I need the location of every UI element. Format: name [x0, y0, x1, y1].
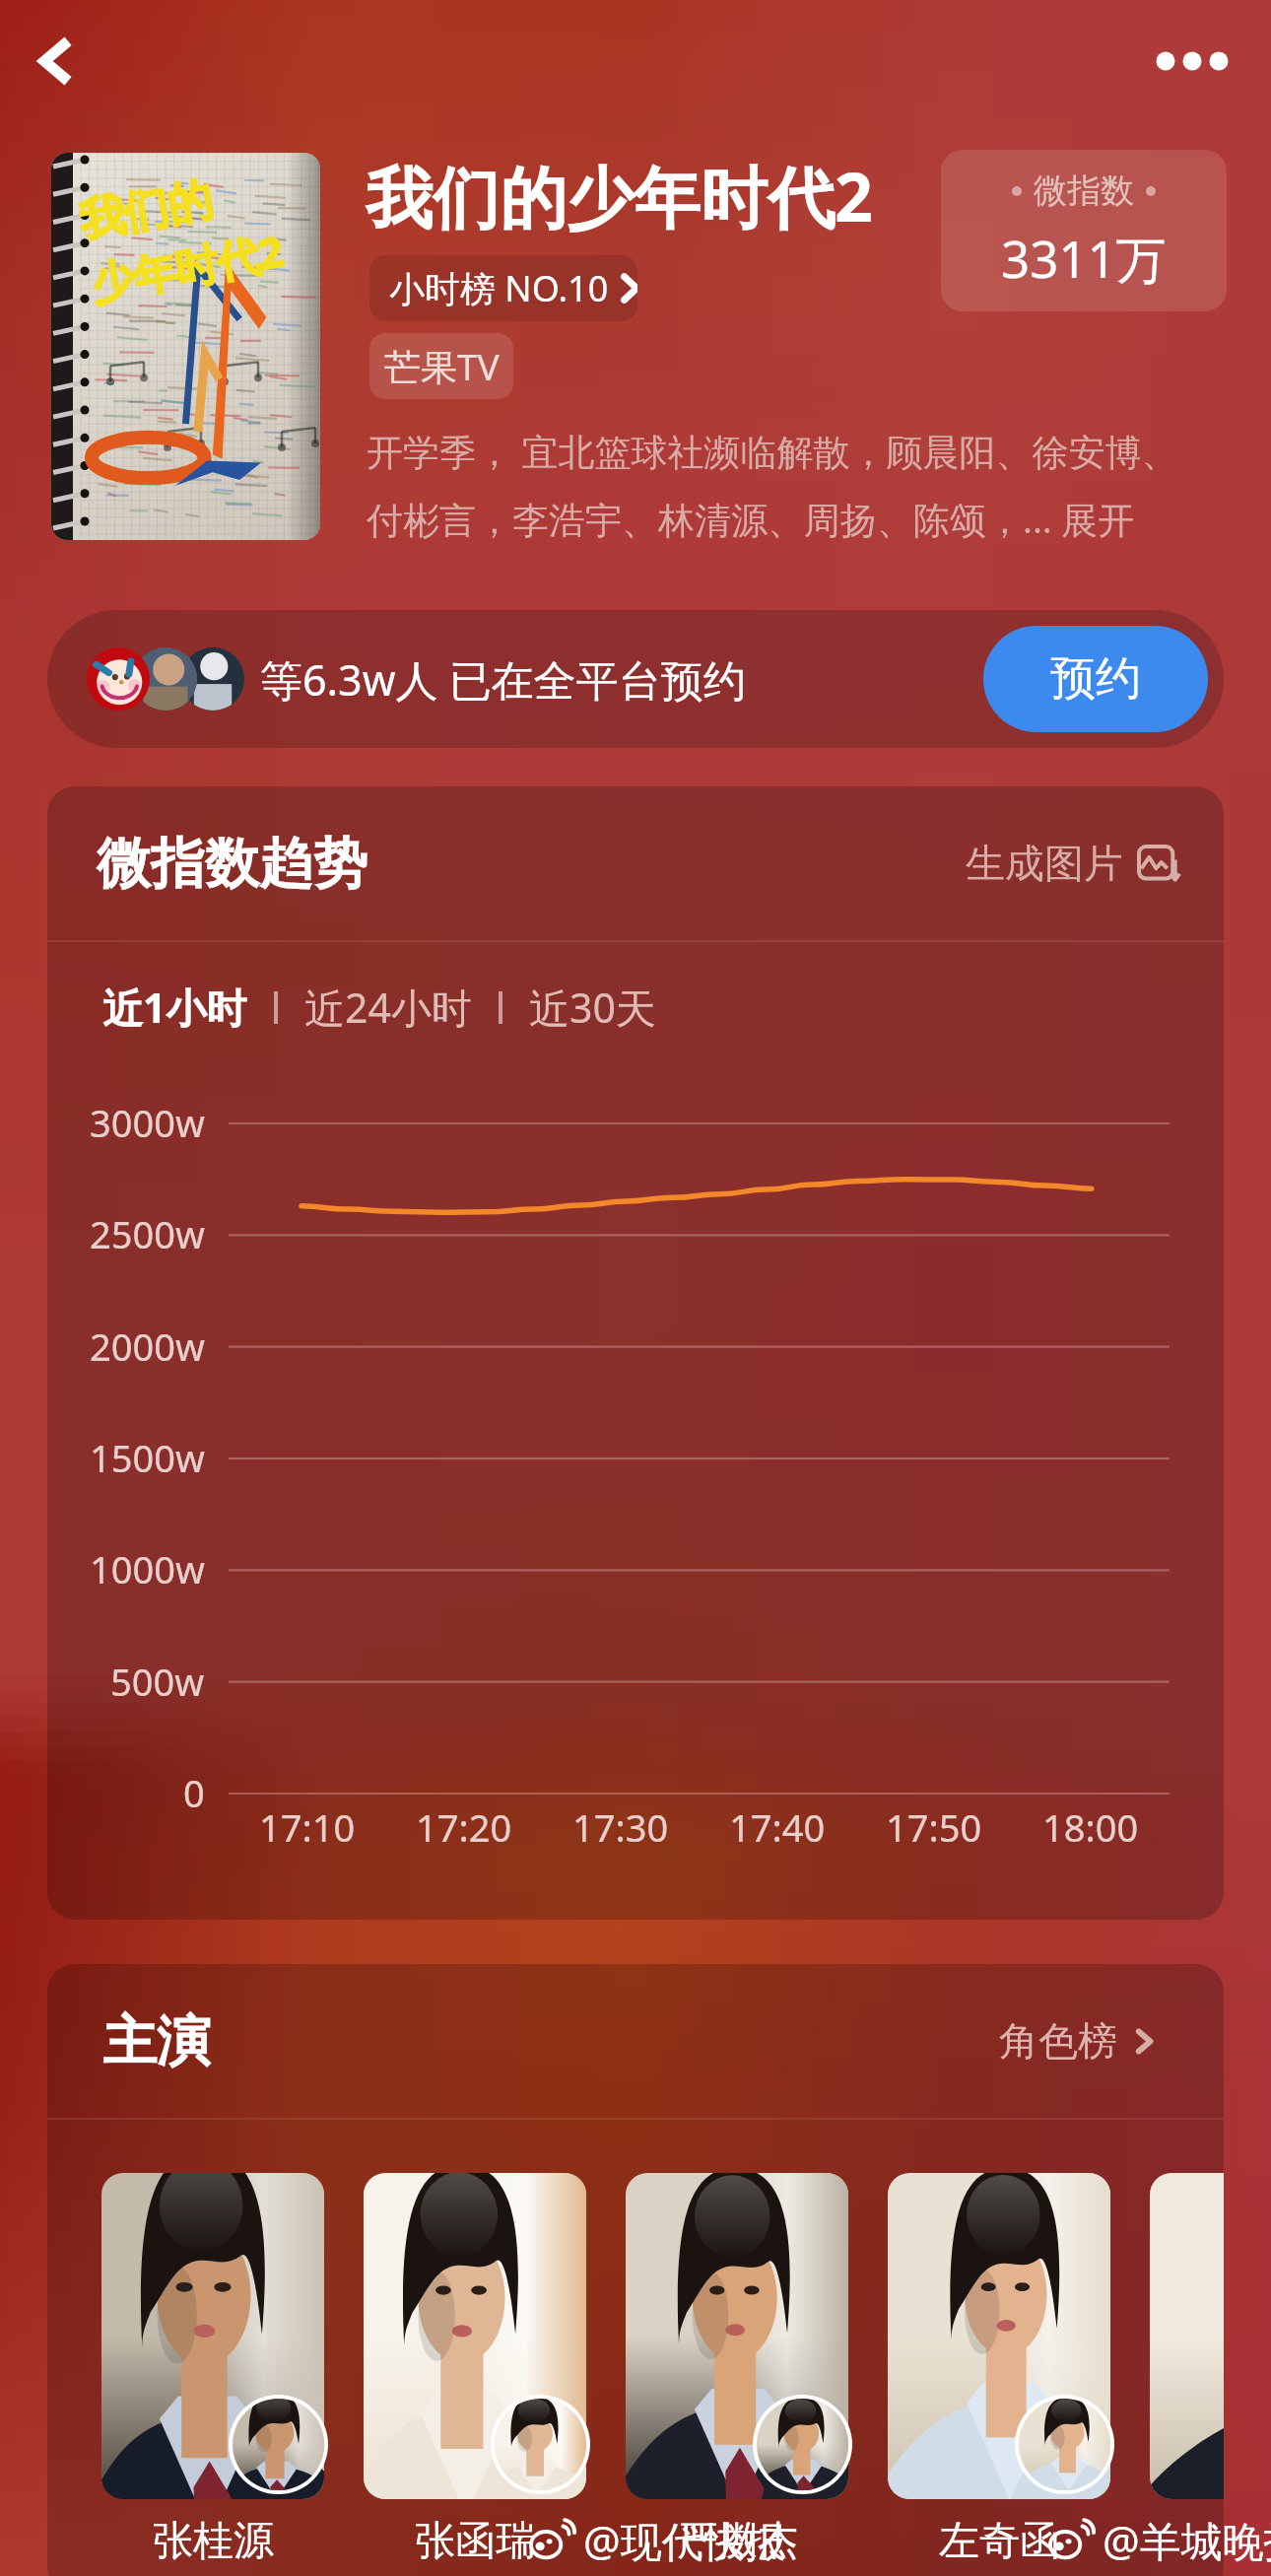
staticText: 芒果TV	[384, 341, 500, 391]
staticText: 500w	[110, 1656, 205, 1707]
button[interactable]: 角色榜	[999, 2016, 1152, 2066]
staticText: 0	[183, 1767, 205, 1818]
staticText: 1500w	[90, 1432, 205, 1483]
staticText: 18:00	[1042, 1801, 1139, 1853]
button[interactable]: Poster	[51, 153, 320, 540]
button[interactable]: More options	[1133, 14, 1251, 108]
staticText: 17:20	[416, 1801, 512, 1853]
staticText: 开学季， 宜北篮球社濒临解散，顾晨阳、徐安博、	[367, 426, 1178, 476]
button[interactable]: 预约	[983, 626, 1208, 732]
staticText: 张桂源	[153, 2516, 274, 2567]
staticText: 张函瑞	[415, 2516, 536, 2567]
staticText: 等6.3w人 已在全平台预约	[260, 650, 746, 709]
button[interactable]: 严擞杰	[626, 2173, 858, 2567]
button[interactable]: 张函瑞	[364, 2173, 596, 2567]
staticText: @羊城晚报	[1103, 2512, 1271, 2568]
staticText: 17:50	[886, 1801, 982, 1853]
staticText: @现代快报	[583, 2512, 786, 2568]
staticText: 少年时代2	[86, 221, 288, 313]
staticText: 2500w	[90, 1208, 205, 1259]
staticText: 1000w	[90, 1543, 205, 1594]
staticText: 生成图片	[966, 839, 1123, 888]
staticText: 17:30	[572, 1801, 669, 1853]
button[interactable]: 近1小时	[102, 980, 247, 1035]
button[interactable]: 陈	[1150, 2173, 1224, 2567]
staticText: 主演	[102, 2007, 211, 2075]
staticText: 小时榜 NO.10	[389, 264, 609, 312]
button[interactable]: 微指数	[941, 150, 1227, 311]
staticText: 2000w	[90, 1321, 205, 1372]
button[interactable]: Back	[10, 14, 104, 108]
staticText: 17:10	[259, 1801, 356, 1853]
staticText: 3000w	[90, 1097, 205, 1148]
staticText: 微指数	[1034, 169, 1134, 212]
staticText: 17:40	[729, 1801, 826, 1853]
button[interactable]: 小时榜 NO.10	[369, 255, 637, 321]
staticText: 我们的	[76, 171, 217, 251]
staticText: 角色榜	[999, 2016, 1117, 2066]
staticText: 微指数趋势	[97, 830, 368, 898]
button[interactable]: 芒果TV	[369, 333, 513, 399]
button[interactable]: 近24小时	[304, 980, 472, 1035]
staticText: 付彬言，李浩宇、林清源、周扬、陈颂，... 展开	[367, 494, 1135, 544]
button[interactable]: 左奇函	[888, 2173, 1120, 2567]
button[interactable]: 等6.3w人 已在全平台预约	[47, 610, 1224, 748]
staticText: 严擞杰	[677, 2516, 798, 2567]
staticText: 3311万	[1001, 224, 1167, 293]
button[interactable]: 近30天	[529, 980, 656, 1035]
button[interactable]: 生成图片	[966, 839, 1180, 888]
staticText: 我们的少年时代2	[366, 150, 873, 241]
staticText: 预约	[1050, 650, 1141, 708]
staticText: 左奇函	[939, 2516, 1060, 2567]
button[interactable]: 张桂源	[101, 2173, 334, 2567]
